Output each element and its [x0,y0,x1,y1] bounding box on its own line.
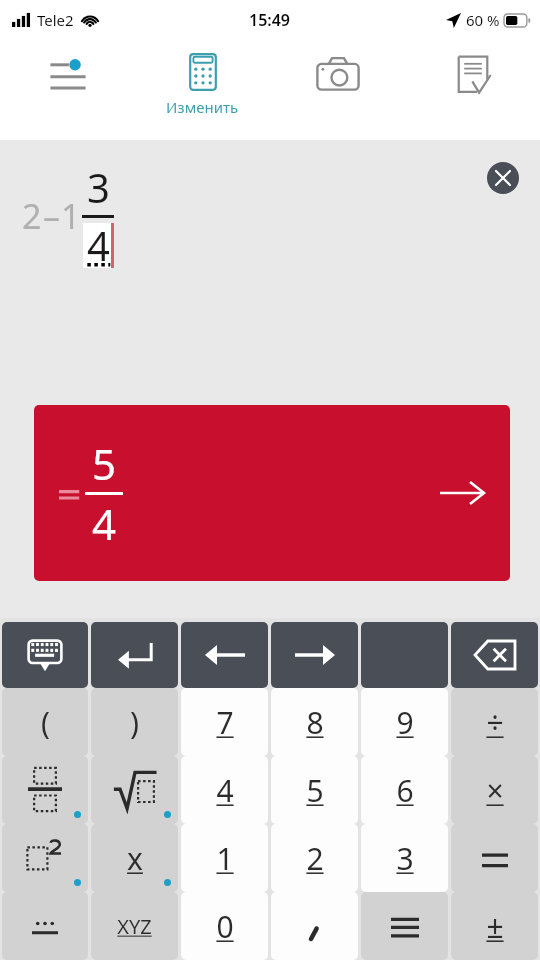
staticText: 15:49 [249,9,291,31]
button[interactable]: 1 [181,824,268,892]
button[interactable]: Изменить [135,40,270,140]
staticText: 3 [87,160,110,214]
staticText: ) [130,702,139,743]
button[interactable]: 3 [361,824,448,892]
button[interactable]: x [91,824,178,892]
button[interactable]: 8 [271,688,358,756]
button[interactable]: 2 [271,824,358,892]
staticText: 4 [216,770,234,811]
staticText: 2 [306,838,324,879]
button[interactable]: Camera [270,40,405,140]
button[interactable]: Square root [91,756,178,824]
other: Next [440,480,484,506]
button[interactable]: ± [451,892,538,960]
staticText: 3 [396,838,414,879]
button[interactable]: 5 [271,756,358,824]
button[interactable]: Settings [0,40,135,140]
button[interactable]: Comma [271,892,358,960]
button[interactable]: Move right [271,622,358,688]
button[interactable]: Minus [451,824,538,892]
button[interactable]: 7 [181,688,268,756]
button[interactable]: XYZ [91,892,178,960]
button[interactable]: 0 [181,892,268,960]
staticText: 60 % [466,10,500,30]
staticText: 2 [22,193,42,239]
button[interactable]: Enter [91,622,178,688]
staticText: x [127,838,143,879]
staticText: 1 [61,193,81,239]
button[interactable]: ÷ [451,688,538,756]
button[interactable]: × [451,756,538,824]
staticText: 4 [92,495,117,552]
button[interactable]: Power [2,824,88,892]
staticText: 6 [396,770,414,811]
staticText: 8 [306,702,324,743]
button[interactable]: Equals [361,892,448,960]
staticText: Tele2 [37,10,74,30]
button[interactable]: Delete [451,622,538,688]
staticText: ± [486,906,504,947]
button[interactable]: 9 [361,688,448,756]
staticText: – [43,193,60,239]
button[interactable]: 6 [361,756,448,824]
staticText: ( [41,702,50,743]
button[interactable]: 4 [181,756,268,824]
button[interactable]: Move left [181,622,268,688]
button[interactable]: More [2,892,88,960]
staticText: 5 [92,435,117,492]
button[interactable]: ) [91,688,178,756]
staticText: XYZ [117,913,152,940]
button[interactable]: Clear [487,162,519,194]
button[interactable]: 5 [34,405,510,581]
staticText: ÷ [486,702,504,743]
staticText: Изменить [166,97,239,117]
staticText: 0 [216,906,234,947]
button[interactable]: Results [405,40,540,140]
staticText: 9 [396,702,414,743]
button[interactable] [361,622,448,688]
staticText: × [486,770,504,811]
button[interactable]: Fraction [2,756,88,824]
staticText: 4 [87,218,110,272]
staticText: 5 [306,770,324,811]
staticText: 7 [216,702,234,743]
button[interactable]: Hide keyboard [2,622,88,688]
button[interactable]: ( [2,688,88,756]
staticText: 1 [216,838,234,879]
